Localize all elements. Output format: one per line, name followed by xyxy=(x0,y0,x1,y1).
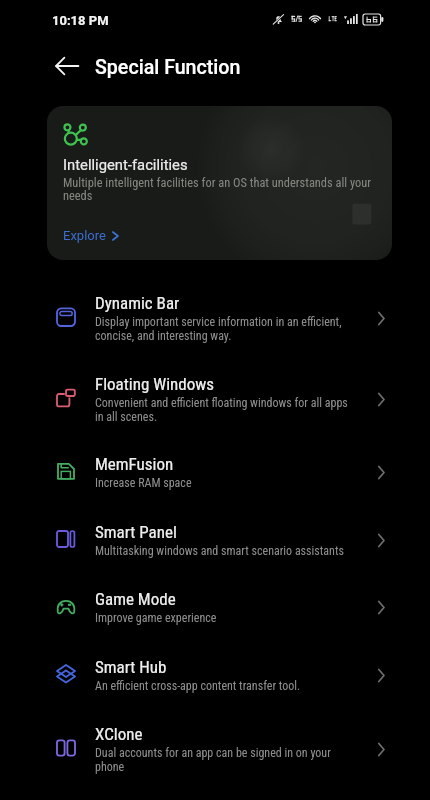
button[interactable]: Smart Panel xyxy=(0,521,430,557)
button[interactable]: Smart Hub xyxy=(0,656,430,692)
staticText: XClone xyxy=(95,726,143,744)
staticText: Display important service information in… xyxy=(95,315,357,343)
staticText: Increase RAM space xyxy=(95,476,192,490)
staticText: Smart Hub xyxy=(95,659,167,677)
button[interactable]: Explore xyxy=(63,227,120,244)
button[interactable]: Intelligent-facilities xyxy=(47,106,392,260)
staticText: MemFusion xyxy=(95,456,174,474)
staticText: Multiple intelligent facilities for an O… xyxy=(63,177,379,203)
staticText: Smart Panel xyxy=(95,524,177,542)
staticText: Convenient and efficient floating window… xyxy=(95,396,357,424)
staticText: Floating Windows xyxy=(95,376,215,394)
staticText: An efficient cross-app content transfer … xyxy=(95,679,301,693)
button[interactable]: XClone xyxy=(0,723,430,773)
staticText: Explore xyxy=(63,227,106,244)
button[interactable]: Dynamic Bar xyxy=(0,292,430,342)
button[interactable]: Back xyxy=(54,53,80,79)
staticText: Intelligent-facilities xyxy=(63,155,188,174)
button[interactable]: Game Mode xyxy=(0,588,430,624)
staticText: Improve game experience xyxy=(95,611,217,625)
staticText: Dynamic Bar xyxy=(95,295,180,313)
button[interactable]: MemFusion xyxy=(0,453,430,489)
staticText: Dual accounts for an app can be signed i… xyxy=(95,746,357,774)
staticText: Game Mode xyxy=(95,591,176,609)
staticText: 10:18 PM xyxy=(52,12,109,29)
button[interactable]: Floating Windows xyxy=(0,373,430,423)
staticText: Special Function xyxy=(95,54,241,79)
staticText: Multitasking windows and smart scenario … xyxy=(95,544,344,558)
